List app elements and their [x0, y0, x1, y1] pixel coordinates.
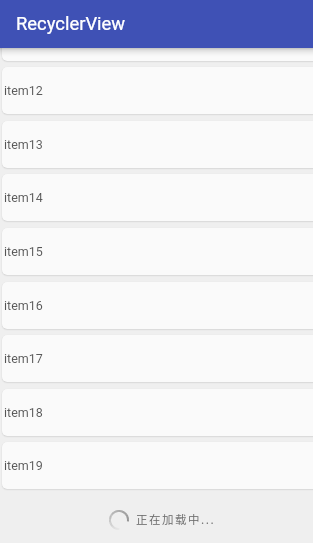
- staticText: item13: [4, 137, 43, 152]
- button[interactable]: item16: [2, 282, 313, 329]
- button[interactable]: item11: [2, 48, 313, 61]
- button[interactable]: item19: [2, 442, 313, 489]
- staticText: item18: [4, 405, 43, 420]
- staticText: item14: [4, 190, 43, 205]
- staticText: item17: [4, 351, 43, 366]
- staticText: item12: [4, 83, 43, 98]
- button[interactable]: item13: [2, 121, 313, 168]
- staticText: 正在加载中...: [136, 511, 216, 528]
- staticText: item16: [4, 298, 43, 313]
- button[interactable]: item15: [2, 228, 313, 275]
- button[interactable]: item17: [2, 335, 313, 382]
- staticText: item19: [4, 458, 43, 473]
- staticText: RecyclerView: [16, 13, 126, 35]
- button[interactable]: item18: [2, 389, 313, 436]
- button[interactable]: item12: [2, 67, 313, 114]
- button[interactable]: item14: [2, 174, 313, 221]
- staticText: item15: [4, 244, 43, 259]
